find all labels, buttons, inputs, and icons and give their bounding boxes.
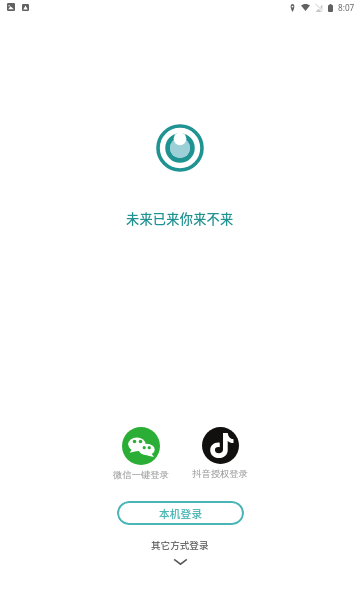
staticText: 未来已来你来不来 [126,209,234,228]
other: WeChat login [122,427,160,465]
button[interactable]: WeChat login [113,427,169,481]
staticText: 微信一键登录 [113,469,169,481]
button[interactable]: Douyin login [192,427,248,480]
staticText: 其它方式登录 [151,538,209,552]
staticText: 本机登录 [159,506,203,521]
button[interactable]: 其它方式登录 [151,538,209,565]
staticText: 抖音授权登录 [192,468,248,480]
staticText: 8:07 [338,2,355,13]
other: Douyin login [202,427,239,464]
button[interactable]: 本机登录 [117,501,244,525]
